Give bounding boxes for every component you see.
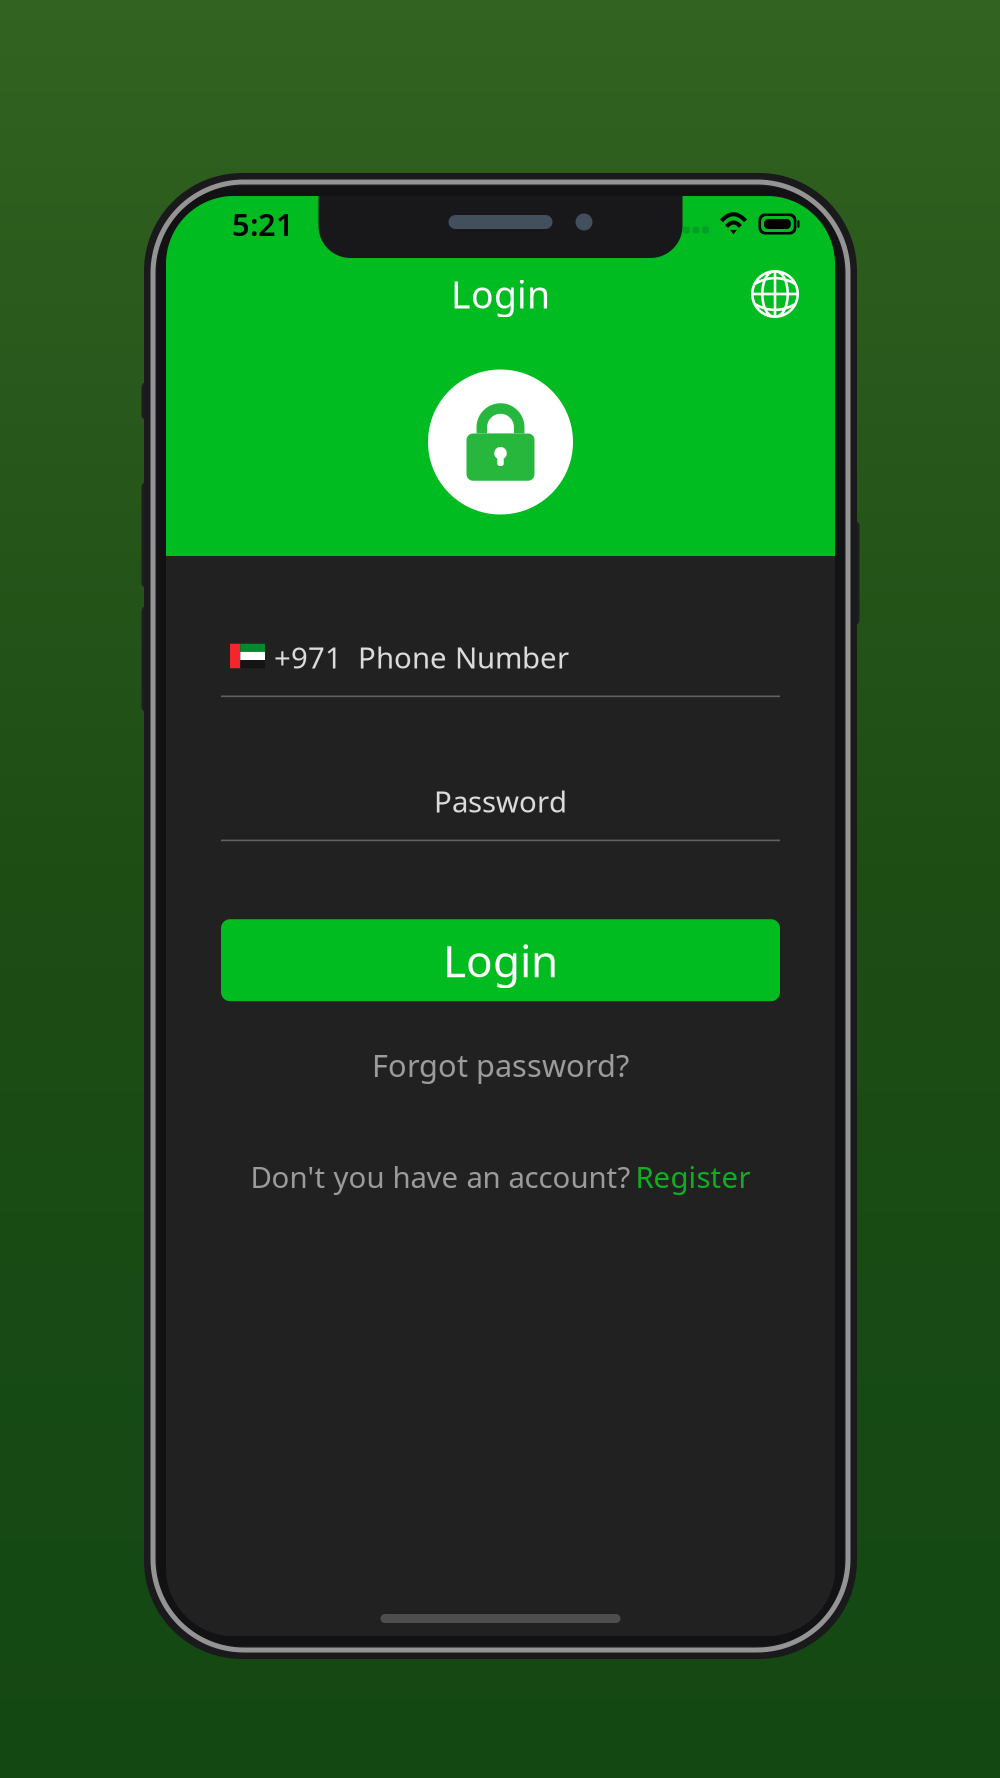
button[interactable]: Register: [630, 1157, 750, 1196]
staticText: Login: [451, 269, 550, 319]
button[interactable]: Forgot password?: [221, 1043, 780, 1087]
staticText: 5:21: [232, 204, 294, 244]
staticText: Don't you have an account?: [250, 1157, 630, 1196]
staticText: Login: [443, 931, 558, 989]
staticText: Forgot password?: [372, 1045, 629, 1085]
button[interactable]: Language: [742, 261, 808, 327]
button[interactable]: Password: [221, 784, 780, 818]
staticText: +971: [274, 637, 342, 676]
button[interactable]: +971: [221, 640, 780, 674]
staticText: Password: [434, 782, 567, 821]
staticText: Phone Number: [358, 637, 569, 676]
staticText: Register: [635, 1157, 750, 1196]
button[interactable]: Login: [221, 919, 780, 1001]
